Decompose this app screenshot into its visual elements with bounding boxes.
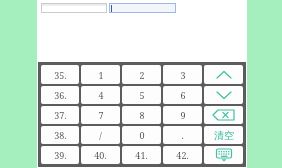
button[interactable]: 8 bbox=[122, 106, 161, 124]
button[interactable]: 5 bbox=[122, 86, 161, 104]
button[interactable]: Backspace bbox=[204, 106, 243, 124]
staticText: 35. bbox=[54, 69, 67, 81]
button[interactable]: Previous field bbox=[204, 65, 243, 84]
staticText: 38. bbox=[54, 129, 67, 141]
button[interactable]: 38. bbox=[41, 126, 79, 144]
staticText: 39. bbox=[54, 149, 67, 161]
staticText: 3 bbox=[180, 69, 186, 81]
staticText: 37. bbox=[54, 109, 67, 121]
staticText: 2 bbox=[139, 69, 145, 81]
staticText: 0 bbox=[139, 129, 145, 141]
staticText: 42. bbox=[176, 149, 189, 161]
button[interactable]: 4 bbox=[81, 86, 120, 104]
button[interactable]: . bbox=[163, 126, 202, 144]
button[interactable]: 41. bbox=[122, 146, 161, 164]
button[interactable]: 清空 bbox=[204, 126, 243, 144]
staticText: 4 bbox=[98, 89, 104, 101]
staticText: 清空 bbox=[214, 129, 234, 142]
staticText: 36. bbox=[54, 89, 67, 101]
button[interactable]: 2 bbox=[122, 65, 161, 84]
button[interactable]: 36. bbox=[41, 86, 79, 104]
button[interactable]: 6 bbox=[163, 86, 202, 104]
button[interactable]: 35. bbox=[41, 65, 79, 84]
button[interactable]: 9 bbox=[163, 106, 202, 124]
staticText: 8 bbox=[139, 109, 145, 121]
button[interactable]: 0 bbox=[122, 126, 161, 144]
staticText: 1 bbox=[98, 69, 104, 81]
staticText: 9 bbox=[180, 109, 186, 121]
button[interactable]: 40. bbox=[81, 146, 120, 164]
button[interactable]: / bbox=[81, 126, 120, 144]
button[interactable]: Next field bbox=[204, 86, 243, 104]
staticText: / bbox=[99, 129, 102, 141]
staticText: 40. bbox=[94, 149, 107, 161]
button[interactable]: 39. bbox=[41, 146, 79, 164]
button[interactable]: 42. bbox=[163, 146, 202, 164]
staticText: 41. bbox=[135, 149, 148, 161]
button[interactable]: 37. bbox=[41, 106, 79, 124]
button[interactable]: Hide keyboard bbox=[204, 146, 243, 164]
staticText: 7 bbox=[98, 109, 104, 121]
staticText: 5 bbox=[139, 89, 145, 101]
button[interactable]: 7 bbox=[81, 106, 120, 124]
button[interactable] bbox=[109, 3, 176, 13]
button[interactable]: 3 bbox=[163, 65, 202, 84]
button[interactable] bbox=[41, 3, 107, 13]
button[interactable]: 1 bbox=[81, 65, 120, 84]
staticText: . bbox=[181, 129, 184, 141]
staticText: 6 bbox=[180, 89, 186, 101]
